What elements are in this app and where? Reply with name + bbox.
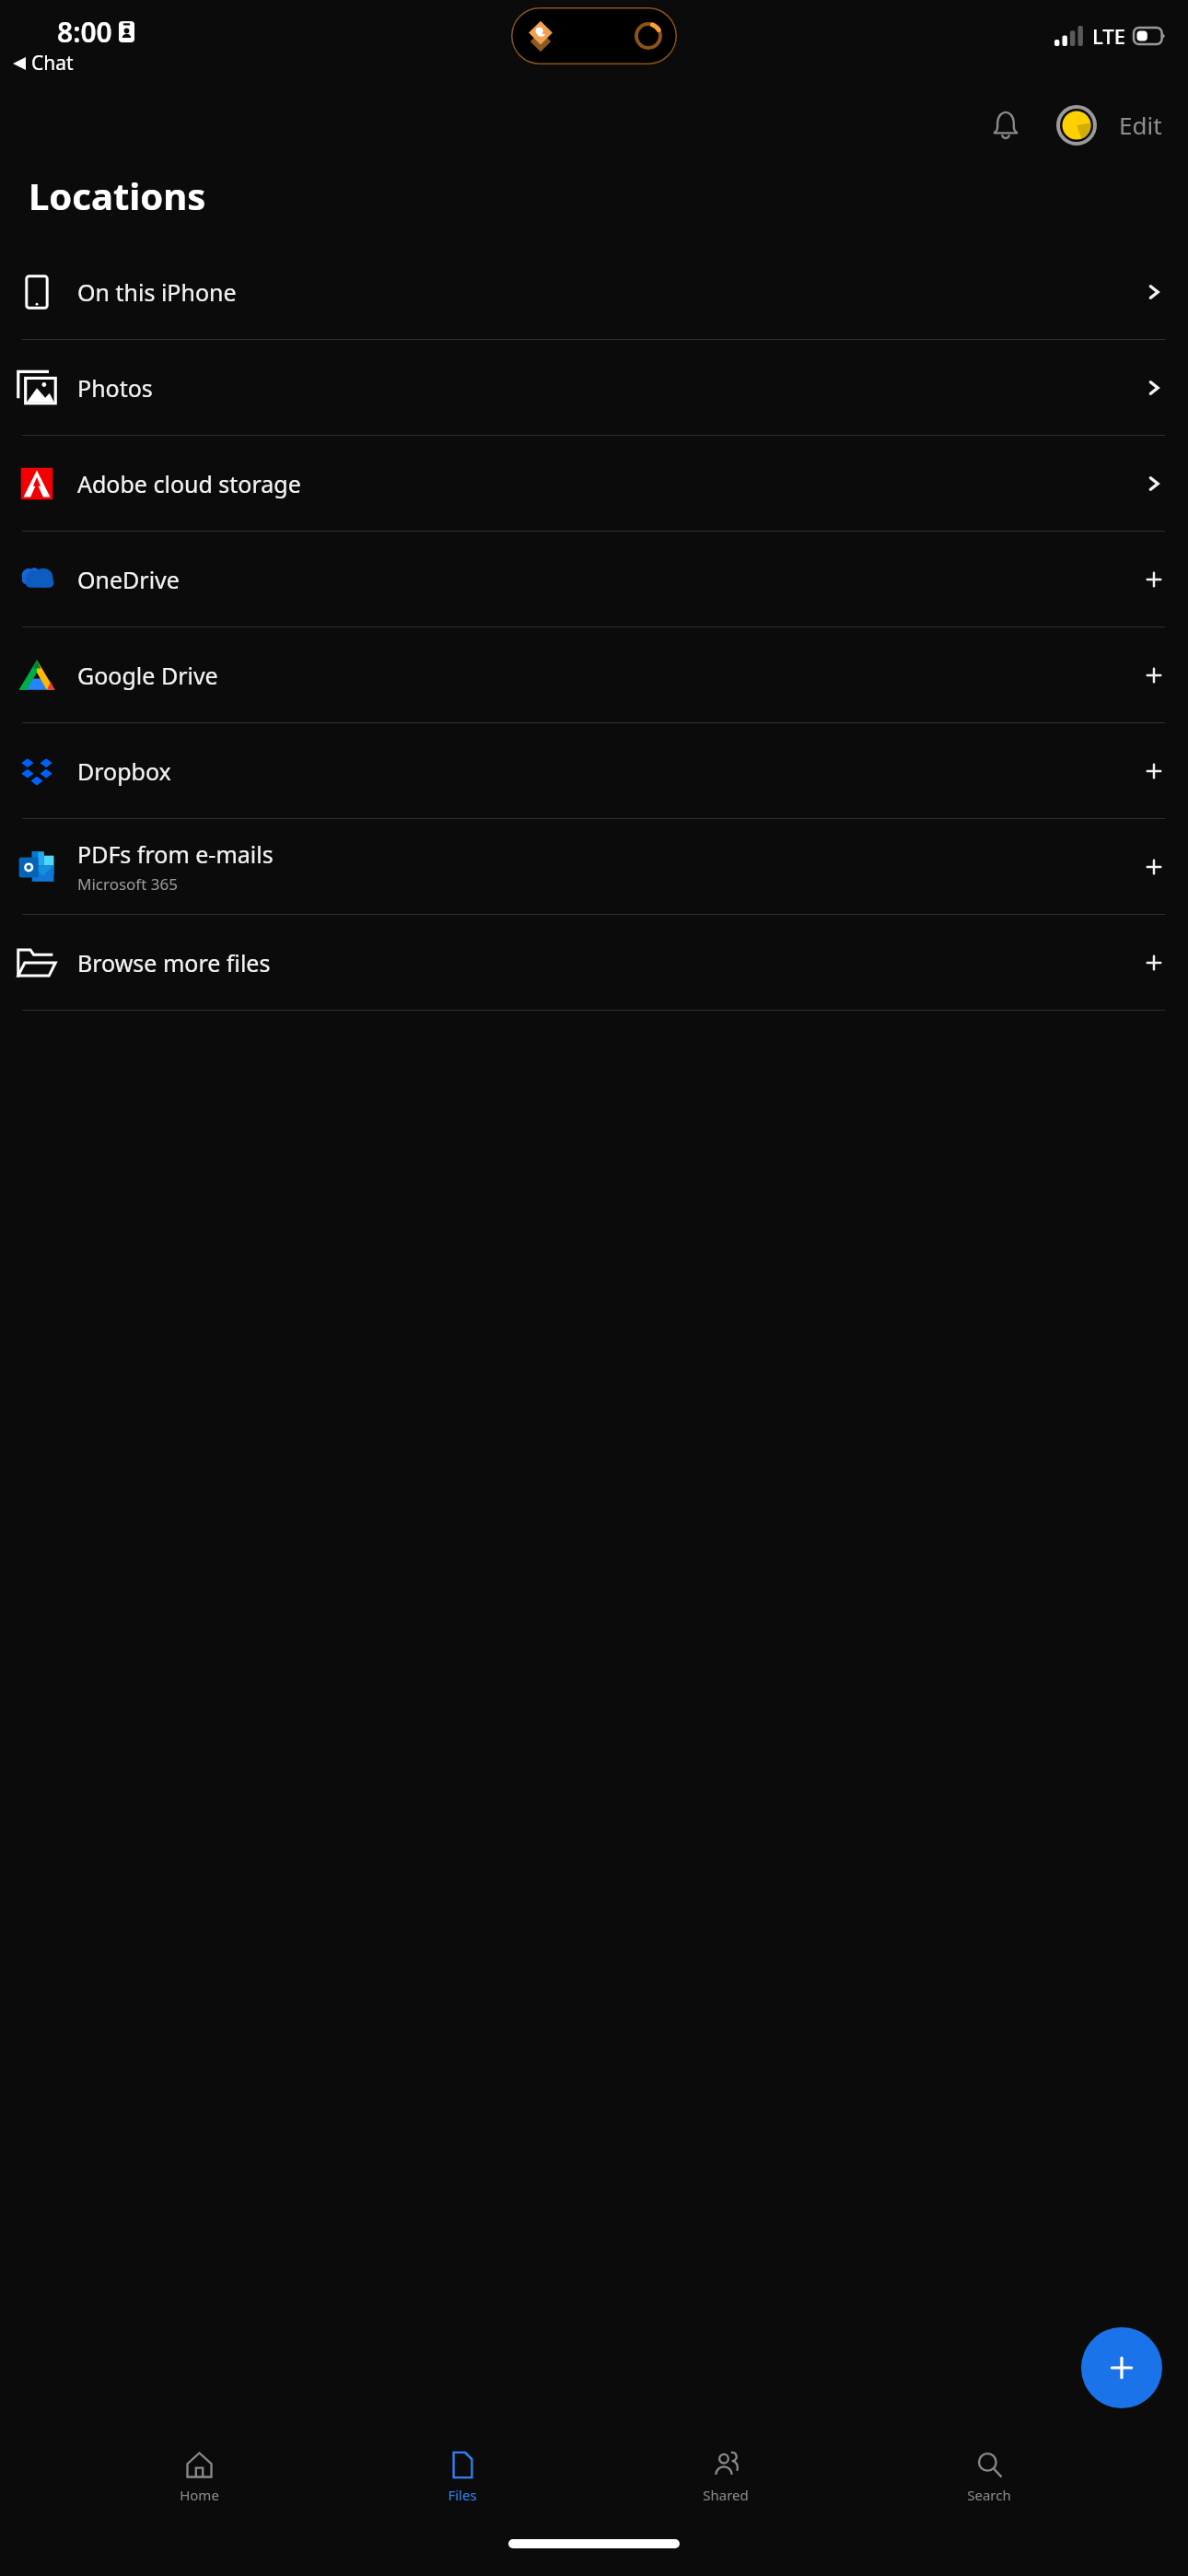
staticText: 8:00 [57, 13, 112, 51]
staticText: Microsoft 365 [77, 873, 178, 895]
button[interactable]: On this iPhone [0, 244, 1188, 339]
staticText: Google Drive [77, 660, 218, 691]
staticText: Browse more files [77, 947, 271, 978]
staticText: Search [967, 2486, 1011, 2504]
button[interactable]: Dropbox [0, 723, 1188, 818]
button[interactable]: Edit [1113, 100, 1168, 150]
staticText: Photos [77, 372, 153, 404]
button[interactable]: OneDrive [0, 532, 1188, 626]
staticText: LTE [1092, 22, 1125, 50]
staticText: OneDrive [77, 564, 180, 595]
button[interactable]: Home [134, 2447, 263, 2508]
staticText: Shared [703, 2486, 749, 2504]
button[interactable]: Search [925, 2447, 1054, 2508]
staticText: Files [448, 2486, 477, 2504]
button[interactable]: Adobe cloud storage [0, 436, 1188, 531]
staticText: Chat [31, 50, 74, 76]
button[interactable]: Browse more files [0, 915, 1188, 1010]
staticText: Adobe cloud storage [77, 468, 301, 499]
button[interactable]: Shared [661, 2447, 790, 2508]
button[interactable]: Chat [13, 50, 74, 76]
staticText: PDFs from e-mails [77, 838, 274, 870]
button[interactable]: Create [1081, 2327, 1162, 2408]
button[interactable]: Files [398, 2447, 527, 2508]
button[interactable]: Google Drive [0, 627, 1188, 722]
staticText: Locations [29, 170, 206, 220]
staticText: Dropbox [77, 755, 171, 787]
staticText: Home [180, 2486, 219, 2504]
staticText: On this iPhone [77, 276, 237, 308]
button[interactable]: Notifications [975, 95, 1036, 156]
staticText: Edit [1119, 109, 1162, 141]
button[interactable]: Photos [0, 340, 1188, 435]
button[interactable]: Storage [1049, 98, 1104, 153]
button[interactable]: PDFs from e-mails [0, 819, 1188, 914]
